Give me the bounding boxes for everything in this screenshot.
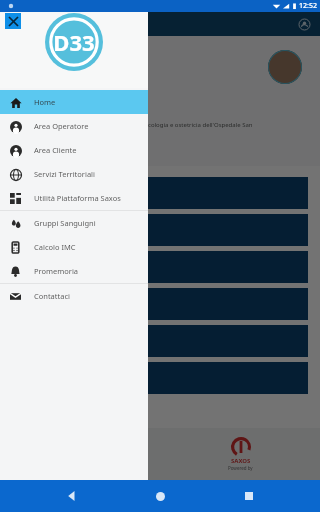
staticText: 12:52 (299, 1, 317, 11)
staticText: Specializzazione (12, 94, 69, 104)
button[interactable]: Home (0, 90, 148, 114)
staticText: Area Operatore (34, 121, 89, 131)
staticText: Promemoria (34, 266, 79, 276)
staticText: Ginecologia e Ostetricia (12, 104, 85, 113)
button[interactable]: Home (143, 480, 177, 512)
button[interactable]: Account (296, 16, 312, 32)
staticText: Home (34, 97, 56, 107)
staticText: Utilità Piattaforma Saxos (34, 193, 121, 203)
button[interactable]: LE NOSTRE DISCIPLINE (12, 288, 308, 320)
button[interactable]: VAI AL NOSTRO SITO (12, 177, 308, 209)
staticText: DOTT.SSA ANNALISA POLA (12, 50, 117, 61)
staticText: AREA CLIENTE (22, 262, 71, 272)
staticText: VAI AL NOSTRO SITO (22, 188, 94, 198)
staticText: SAXOS (231, 457, 251, 465)
staticText: Servizi Territoriali (34, 169, 95, 179)
staticText: Gruppi Sanguigni (34, 218, 96, 228)
staticText: Calcolo IMC (34, 242, 76, 252)
button[interactable]: Back (55, 480, 89, 512)
button[interactable]: Utilità Piattaforma Saxos (0, 186, 148, 210)
staticText: Area Cliente (34, 145, 77, 155)
button[interactable]: MESSAGE COVID19 (12, 362, 308, 394)
button[interactable]: Contattaci (0, 284, 148, 308)
button[interactable]: Close navigation drawer (5, 13, 21, 29)
staticText: D33 (53, 27, 95, 57)
button[interactable]: AREA RISERVATA (12, 325, 308, 357)
button[interactable]: Gruppi Sanguigni (0, 211, 148, 235)
button[interactable]: AREA CLIENTE (12, 251, 308, 283)
staticText: PRENOTA ONLINE (22, 225, 84, 235)
button[interactable]: Area Cliente (0, 138, 148, 162)
button[interactable]: PRENOTA ONLINE (12, 214, 308, 246)
staticText: Powered by (228, 465, 253, 471)
button[interactable]: Promemoria (0, 259, 148, 283)
button[interactable]: Area Operatore (0, 114, 148, 138)
button[interactable]: Servizi Territoriali (0, 162, 148, 186)
staticText: Contattaci (34, 291, 70, 301)
button[interactable]: Calcolo IMC (0, 235, 148, 259)
button[interactable]: Recent apps (232, 480, 266, 512)
staticText: Dirigente Medico di I Livello presso l'U… (12, 121, 262, 137)
